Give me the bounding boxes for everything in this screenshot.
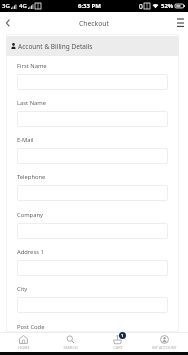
button[interactable]: Account & Billing Details xyxy=(11,36,179,56)
button[interactable]: Back xyxy=(0,12,16,34)
staticText: 0 xyxy=(139,2,143,11)
staticText: CART xyxy=(113,345,123,350)
button[interactable]: Last Name xyxy=(17,111,168,127)
staticText: 1 xyxy=(121,333,124,338)
button[interactable]: Address 1 xyxy=(17,260,168,276)
staticText: City xyxy=(17,285,28,293)
staticText: Last Name xyxy=(17,99,47,107)
button[interactable]: HOME xyxy=(0,333,47,352)
button[interactable]: Menu xyxy=(172,12,188,34)
staticText: First Name xyxy=(17,62,47,70)
staticText: Checkout xyxy=(79,19,109,28)
staticText: Telephone xyxy=(17,173,46,181)
button[interactable]: CART xyxy=(94,333,141,352)
staticText: 52% xyxy=(161,2,174,10)
staticText: Address 1 xyxy=(17,248,44,256)
staticText: 4G xyxy=(19,2,27,10)
staticText: MY ACCOUNT xyxy=(152,345,177,350)
staticText: Account & Billing Details xyxy=(18,42,93,51)
staticText: HOME xyxy=(18,345,30,350)
button[interactable]: Company xyxy=(17,223,168,239)
staticText: 6:33 PM xyxy=(78,2,101,10)
button[interactable]: SEARCH xyxy=(47,333,94,352)
staticText: Company xyxy=(17,211,43,219)
button[interactable]: E-Mail xyxy=(17,148,168,164)
button[interactable]: First Name xyxy=(17,74,168,90)
button[interactable]: City xyxy=(17,297,168,313)
button[interactable]: MY ACCOUNT xyxy=(141,333,188,352)
staticText: SEARCH xyxy=(63,345,78,350)
button[interactable]: Telephone xyxy=(17,185,168,201)
staticText: E-Mail xyxy=(17,136,34,144)
staticText: Post Code xyxy=(17,323,45,331)
button[interactable]: Post Code xyxy=(17,335,168,351)
staticText: 3G xyxy=(2,2,10,10)
